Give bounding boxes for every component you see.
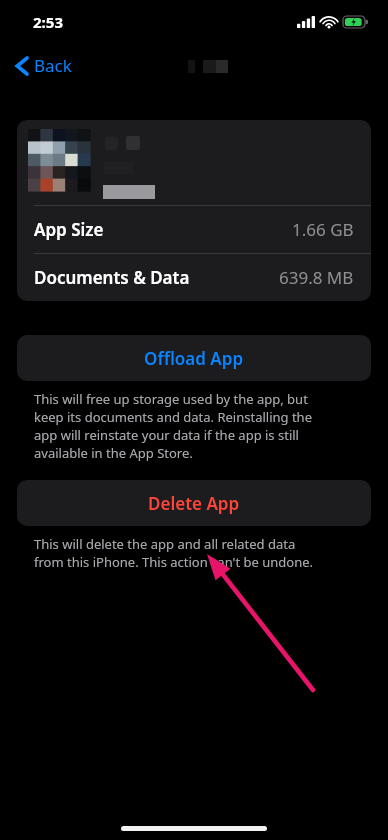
staticText: available in the App Store. [34, 444, 193, 462]
staticText: from this iPhone. This action can't be u… [34, 553, 314, 571]
staticText: 639.8 MB [279, 266, 354, 289]
button[interactable]: App Size [17, 206, 371, 253]
staticText: 1.66 GB [292, 218, 354, 241]
button[interactable]: Offload App [17, 335, 371, 381]
staticText: This will free up storage used by the ap… [34, 390, 308, 408]
staticText: 2:53 [33, 12, 63, 32]
staticText: This will delete the app and all related… [34, 535, 296, 553]
staticText: Documents & Data [34, 266, 190, 289]
staticText: App Size [34, 218, 104, 241]
button[interactable]: Documents & Data [17, 254, 371, 301]
staticText: Offload App [144, 347, 244, 370]
staticText: keep its documents and data. Reinstallin… [34, 408, 312, 426]
staticText: app will reinstate your data if the app … [34, 426, 299, 444]
button[interactable]: Back [10, 50, 78, 81]
button[interactable]: Delete App [17, 480, 371, 526]
staticText: Back [34, 54, 72, 77]
staticText: Delete App [148, 492, 240, 515]
